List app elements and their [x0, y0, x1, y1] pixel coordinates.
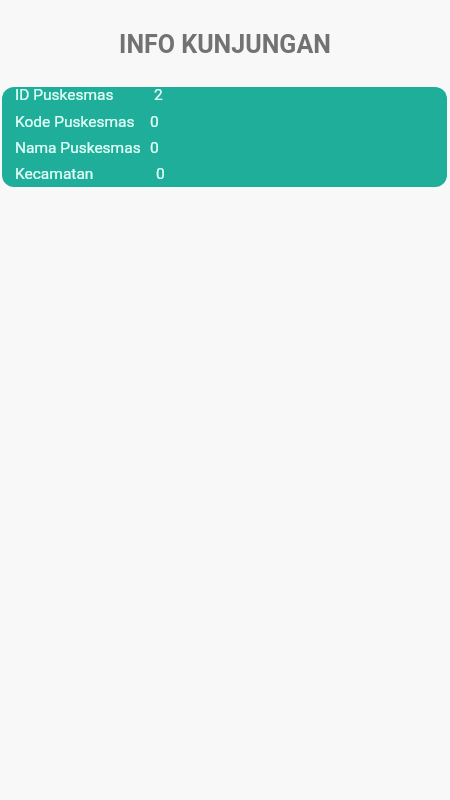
staticText: 2 — [154, 87, 163, 104]
staticText: Kode Puskesmas — [15, 113, 135, 131]
staticText: Nama Puskesmas — [15, 139, 141, 157]
button[interactable]: Nama Puskesmas — [2, 140, 447, 167]
button[interactable]: Kecamatan — [2, 166, 447, 187]
staticText: 0 — [150, 139, 159, 157]
button[interactable]: Kode Puskesmas — [2, 114, 447, 141]
staticText: 0 — [150, 113, 159, 131]
staticText: ID Puskesmas — [15, 87, 114, 104]
staticText: 0 — [156, 165, 165, 183]
button[interactable]: ID Puskesmas — [2, 87, 447, 114]
staticText: Kecamatan — [15, 165, 94, 183]
staticText: INFO KUNJUNGAN — [0, 30, 450, 59]
